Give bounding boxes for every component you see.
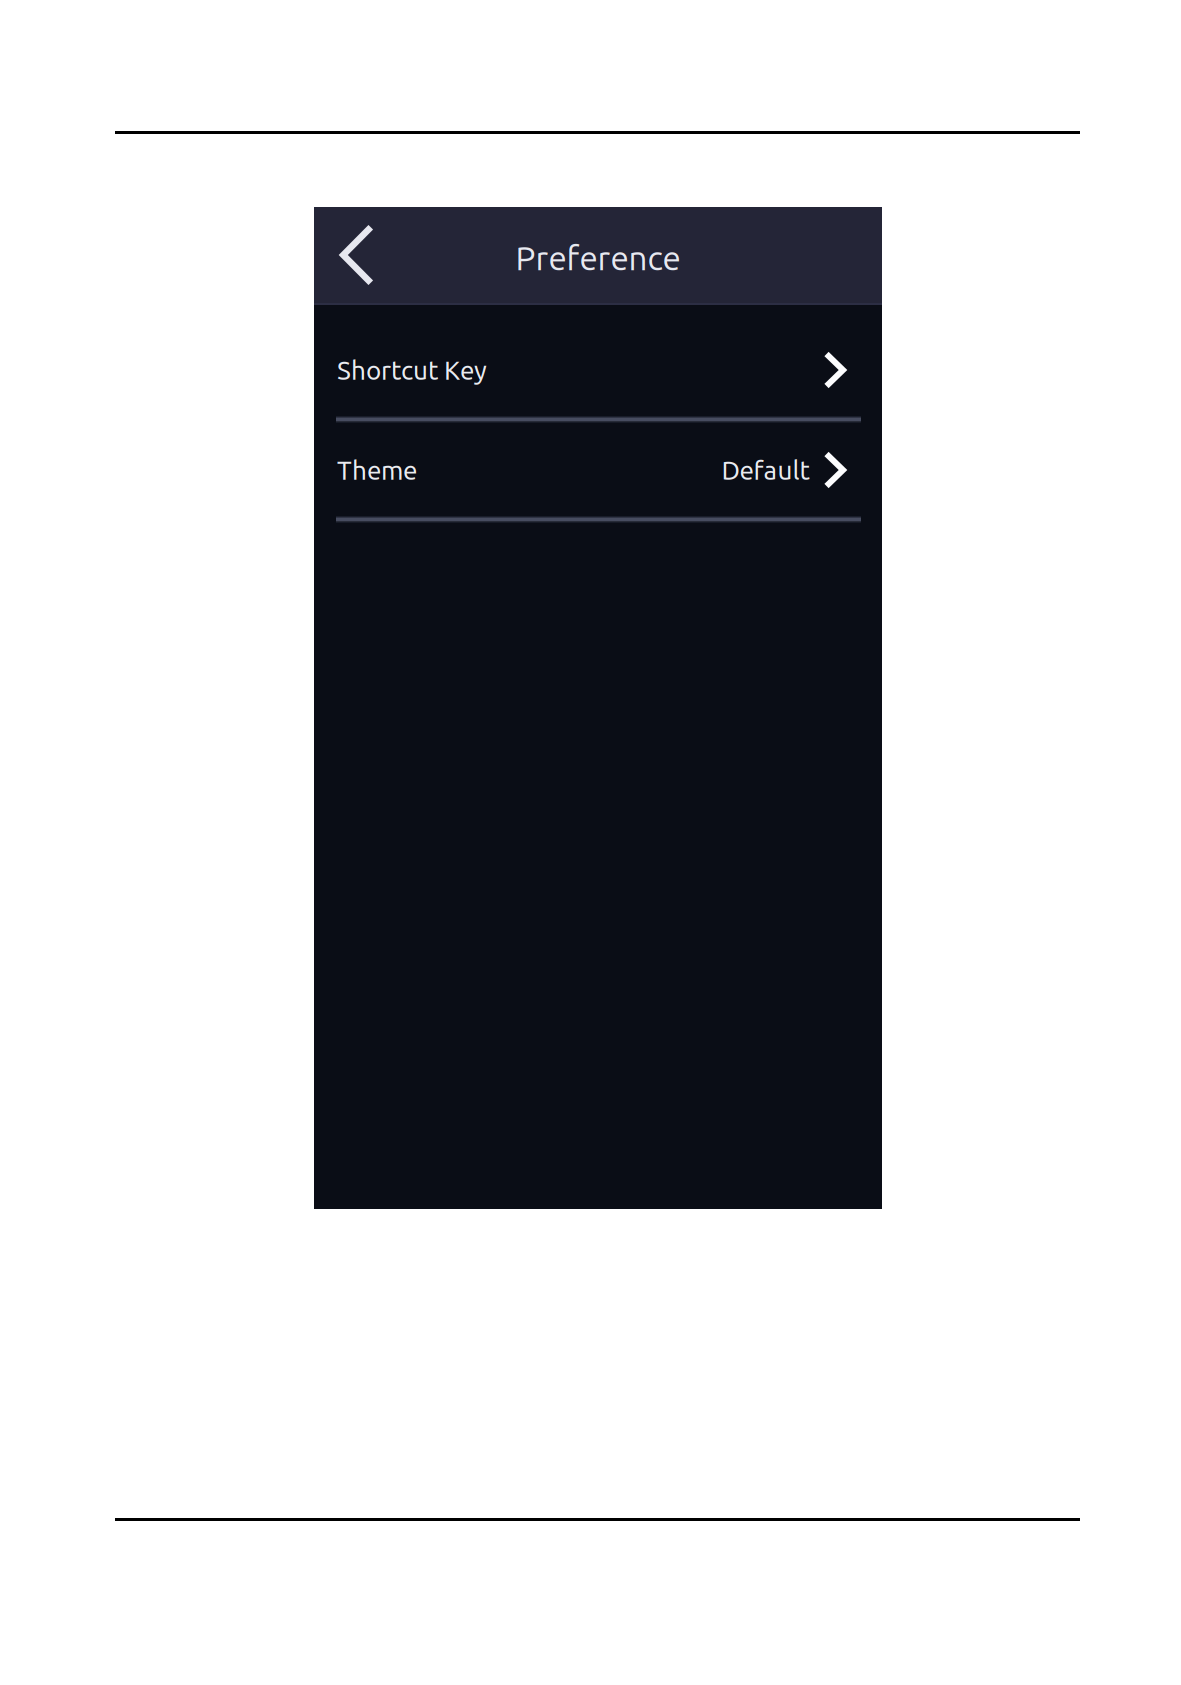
button[interactable]: Theme — [314, 420, 882, 520]
button[interactable]: Shortcut Key — [314, 320, 882, 420]
staticText: Theme — [337, 455, 417, 484]
staticText: Preference — [515, 239, 680, 277]
button[interactable]: Back — [314, 207, 388, 303]
staticText: Shortcut Key — [337, 355, 487, 384]
staticText: Default — [721, 455, 809, 484]
